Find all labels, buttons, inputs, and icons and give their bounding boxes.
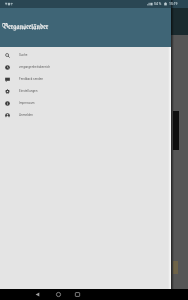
button[interactable]: Impressum [0,97,171,109]
staticText: Feedback senden [19,77,44,81]
button[interactable]: Back [33,290,42,299]
button[interactable]: Suche [0,49,171,61]
staticText: Einstellungen [19,89,38,93]
button[interactable]: Einstellungen [0,85,171,97]
button[interactable]: Recents [73,290,82,299]
button[interactable]: vergangenheitsbereich [0,61,171,73]
button[interactable]: Feedback senden [0,73,171,85]
staticText: Berganseeländer [2,24,49,31]
staticText: Anmelden [19,113,33,117]
staticText: Suche [19,53,28,57]
staticText: vergangenheitsbereich [19,65,51,69]
button[interactable]: Home [54,290,63,299]
staticText: Impressum [19,101,35,105]
staticText: 15:19 [169,2,178,6]
button[interactable]: Anmelden [0,109,171,121]
staticText: 54 % [154,2,162,6]
